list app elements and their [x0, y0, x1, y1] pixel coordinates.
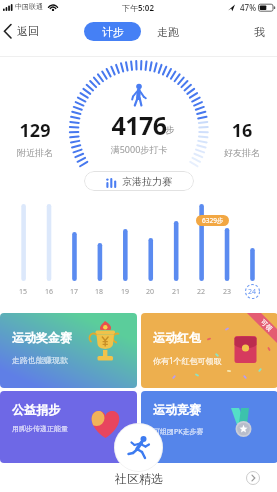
staticText: 15 [15, 287, 31, 492]
staticText: 16 [207, 118, 277, 492]
staticText: 24 [244, 287, 260, 492]
staticText: 运动竞赛 [153, 402, 223, 463]
button[interactable]: 返回 [0, 22, 48, 41]
staticText: 中国联通 [12, 2, 46, 492]
staticText: 你有1个红包可领取 [153, 355, 253, 388]
staticText: 19 [117, 287, 133, 492]
staticText: 22 [193, 287, 209, 492]
staticText: 运动奖金赛 [12, 330, 92, 388]
staticText: 附近排名 [0, 147, 70, 492]
staticText: 17 [66, 287, 82, 492]
button[interactable]: 计步 [84, 22, 141, 41]
staticText: 用脚步传递正能量 [12, 424, 102, 463]
staticText: 走跑 [157, 25, 179, 39]
button[interactable] [114, 423, 163, 472]
staticText: 47% [237, 2, 259, 492]
button[interactable] [246, 471, 260, 485]
staticText: 京港拉力赛 [122, 175, 172, 188]
staticText: 可组团PK走步赛 [153, 427, 243, 463]
staticText: 运动红包 [153, 330, 223, 388]
staticText: 我 [254, 25, 265, 39]
staticText: 走路也能赚现款 [12, 355, 102, 388]
button[interactable]: 公益捐步 [0, 391, 137, 463]
staticText: 下午5:02 [108, 2, 168, 492]
staticText: 4176 [79, 108, 199, 492]
staticText: 公益捐步 [12, 402, 82, 463]
button[interactable]: 走跑 [151, 22, 185, 41]
staticText: 社区精选 [89, 471, 189, 492]
staticText: 计步 [102, 25, 124, 39]
staticText: 16 [41, 287, 57, 492]
staticText: 6329步 [202, 216, 224, 225]
button[interactable]: 运动竞赛 [141, 391, 277, 463]
staticText: 18 [91, 287, 107, 492]
staticText: 23 [219, 287, 235, 492]
button[interactable]: 运动红包 [141, 313, 277, 388]
staticText: 20 [142, 287, 158, 492]
staticText: 21 [168, 287, 184, 492]
staticText: 返回 [13, 24, 43, 43]
staticText: 129 [0, 118, 70, 492]
button[interactable]: 运动奖金赛 [0, 313, 137, 388]
staticText: 好友排名 [207, 147, 277, 492]
button[interactable]: 京港拉力赛 [84, 171, 194, 191]
staticText: 满5000步打卡 [89, 143, 189, 492]
staticText: 步 [163, 124, 177, 492]
button[interactable]: 我 [246, 22, 272, 41]
staticText: 可领 [259, 318, 274, 333]
